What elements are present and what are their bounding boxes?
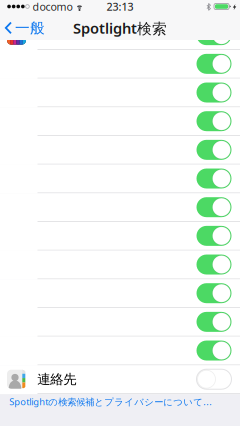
- button[interactable]: [0, 251, 240, 279]
- button[interactable]: [0, 107, 240, 136]
- button[interactable]: [0, 308, 240, 337]
- button[interactable]: [0, 50, 240, 79]
- button[interactable]: [0, 222, 240, 251]
- button[interactable]: [0, 193, 240, 222]
- staticText: Spotlightの検索候補とプライバシーについて...: [9, 395, 212, 408]
- button[interactable]: Spotlightの検索候補とプライバシーについて...: [0, 394, 240, 409]
- staticText: Spotlight検索: [73, 18, 167, 38]
- staticText: docomo: [32, 0, 72, 14]
- button[interactable]: [0, 279, 240, 308]
- button[interactable]: [0, 21, 240, 50]
- button[interactable]: 一般: [0, 16, 45, 40]
- button[interactable]: [0, 79, 240, 107]
- staticText: 23:13: [106, 0, 133, 14]
- button[interactable]: [0, 136, 240, 165]
- staticText: 連絡先: [37, 371, 76, 387]
- button[interactable]: 連絡先: [0, 365, 240, 394]
- staticText: 一般: [15, 19, 45, 37]
- button[interactable]: [0, 337, 240, 365]
- button[interactable]: [0, 165, 240, 193]
